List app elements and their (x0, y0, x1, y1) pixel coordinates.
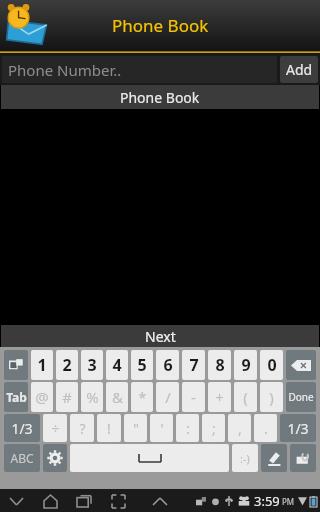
button[interactable]: @ (31, 382, 53, 412)
staticText: 7 (189, 354, 199, 376)
staticText: , (238, 419, 242, 438)
button[interactable]: ( (234, 382, 257, 412)
button[interactable]: Space (70, 444, 229, 472)
staticText: Phone Number.. (8, 60, 122, 80)
button[interactable]: # (56, 382, 78, 412)
staticText: + (215, 387, 224, 407)
staticText: ABC (10, 450, 34, 466)
button[interactable]: Expand (149, 490, 171, 512)
button[interactable]: 0 (260, 350, 283, 380)
staticText: Tab (6, 389, 27, 405)
staticText: 2 (62, 354, 72, 376)
button[interactable]: Back (6, 491, 26, 511)
button[interactable]: ABC (4, 444, 40, 472)
button[interactable]: Add (280, 56, 318, 83)
staticText: . (264, 419, 268, 438)
button[interactable]: Screenshot (108, 491, 128, 511)
staticText: & (112, 387, 123, 407)
staticText: :-) (240, 451, 250, 466)
button[interactable]: 3 (81, 350, 103, 380)
button[interactable]: " (124, 414, 147, 442)
button[interactable]: 8 (208, 350, 231, 380)
button[interactable]: Keyboard settings (43, 444, 67, 472)
button[interactable]: :-) (232, 444, 258, 472)
button[interactable]: Hide keyboard (4, 350, 28, 380)
button[interactable]: Phone Number.. (2, 56, 277, 83)
staticText: ; (212, 419, 216, 438)
staticText: Next (145, 327, 176, 346)
staticText: 6 (163, 354, 173, 376)
staticText: / (165, 387, 171, 407)
button[interactable]: Attach clipboard (290, 444, 316, 472)
staticText: : (186, 419, 190, 438)
staticText: % (86, 387, 99, 407)
staticText: 8 (215, 354, 225, 376)
button[interactable]: . (254, 414, 277, 442)
staticText: 5 (137, 354, 147, 376)
staticText: ' (160, 419, 164, 438)
button[interactable]: & (106, 382, 128, 412)
staticText: 0 (267, 354, 277, 376)
staticText: @ (35, 387, 49, 407)
button[interactable]: 2 (56, 350, 78, 380)
staticText: ( (243, 387, 248, 407)
button[interactable]: ; (202, 414, 225, 442)
button[interactable]: Phone Book (1, 85, 319, 109)
staticText: ! (107, 419, 111, 438)
button[interactable]: - (182, 382, 205, 412)
button[interactable]: Recent apps (74, 491, 94, 511)
button[interactable]: 4 (106, 350, 128, 380)
button[interactable]: 7 (182, 350, 205, 380)
staticText: Add (286, 60, 313, 79)
staticText: * (138, 387, 147, 407)
staticText: " (133, 419, 139, 438)
staticText: 1/3 (287, 419, 309, 438)
staticText: 4 (112, 354, 122, 376)
button[interactable]: , (228, 414, 251, 442)
staticText: 3:59 (254, 492, 280, 510)
staticText: 3 (87, 354, 97, 376)
staticText: Done (288, 390, 314, 404)
staticText: ÷ (51, 419, 60, 438)
button[interactable]: % (81, 382, 103, 412)
button[interactable]: 6 (156, 350, 179, 380)
staticText: ? (79, 419, 86, 438)
button[interactable]: 1 (31, 350, 53, 380)
button[interactable]: 5 (131, 350, 153, 380)
button[interactable]: Handwriting (261, 444, 287, 472)
staticText: Phone Book (120, 88, 200, 107)
staticText: 1/3 (11, 419, 33, 438)
button[interactable]: Home (40, 491, 60, 511)
button[interactable]: / (156, 382, 179, 412)
button[interactable]: * (131, 382, 153, 412)
button[interactable]: Next (1, 325, 319, 347)
staticText: # (62, 387, 72, 407)
button[interactable]: ? (70, 414, 94, 442)
staticText: 1 (37, 354, 47, 376)
button[interactable]: + (208, 382, 231, 412)
staticText: - (191, 387, 196, 407)
button[interactable]: Tab (4, 382, 28, 412)
button[interactable]: ' (150, 414, 173, 442)
button[interactable]: ÷ (43, 414, 67, 442)
staticText: Phone Book (112, 14, 209, 37)
staticText: PM (282, 496, 295, 507)
button[interactable]: ! (97, 414, 121, 442)
button[interactable]: ) (260, 382, 283, 412)
button[interactable]: 1/3 (280, 414, 316, 442)
button[interactable]: : (176, 414, 199, 442)
button[interactable]: 9 (234, 350, 257, 380)
button[interactable]: Backspace (286, 350, 316, 380)
button[interactable]: 1/3 (4, 414, 40, 442)
button[interactable]: Done (286, 382, 316, 412)
staticText: ) (269, 387, 274, 407)
staticText: 9 (241, 354, 251, 376)
